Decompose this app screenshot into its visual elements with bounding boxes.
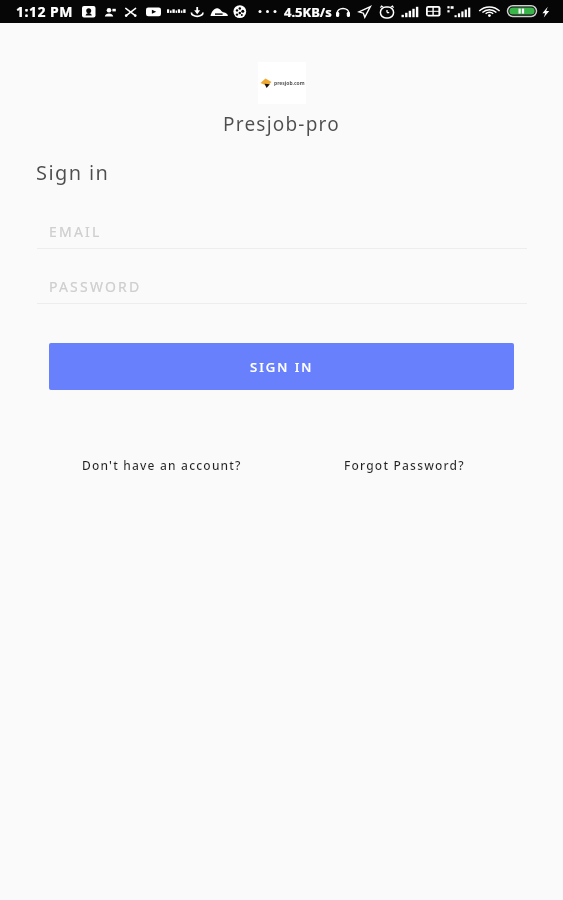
- staticText: 4.5KB/s: [284, 3, 332, 21]
- staticText: PASSWORD: [49, 277, 142, 296]
- staticText: SIGN IN: [250, 358, 314, 376]
- staticText: Presjob-pro: [0, 111, 563, 137]
- staticText: Forgot Password?: [344, 457, 465, 473]
- button[interactable]: Don't have an account?: [82, 457, 242, 473]
- button[interactable]: Forgot Password?: [344, 457, 465, 473]
- button[interactable]: PASSWORD: [37, 265, 527, 307]
- staticText: 1:12 PM: [16, 2, 73, 21]
- staticText: Don't have an account?: [82, 457, 242, 473]
- button[interactable]: SIGN IN: [49, 343, 514, 390]
- staticText: Sign in: [36, 159, 110, 186]
- button[interactable]: EMAIL: [37, 210, 527, 252]
- staticText: presjob.com: [274, 80, 305, 87]
- staticText: EMAIL: [49, 222, 102, 241]
